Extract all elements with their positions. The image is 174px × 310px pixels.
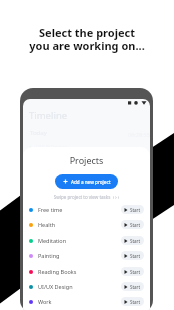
- staticText: UI/UX Design: [38, 283, 73, 290]
- button[interactable]: Work: [23, 294, 150, 309]
- staticText: Health: [38, 221, 56, 228]
- staticText: Painting: [38, 252, 60, 259]
- staticText: Reading Books: [38, 268, 77, 275]
- staticText: Free time: [38, 206, 63, 213]
- button[interactable]: Start: [121, 236, 144, 245]
- button[interactable]: Free time: [23, 202, 150, 217]
- staticText: Start: [130, 207, 141, 213]
- staticText: Start: [130, 238, 141, 244]
- staticText: Start: [130, 269, 141, 275]
- staticText: Timeline: [29, 109, 68, 122]
- button[interactable]: Painting: [23, 248, 150, 263]
- staticText: Meditation: [38, 237, 67, 244]
- button[interactable]: Start: [121, 205, 144, 214]
- staticText: Start: [130, 222, 141, 228]
- button[interactable]: Health: [23, 217, 150, 232]
- staticText: Select the project you are working on...: [29, 25, 145, 53]
- button[interactable]: Start: [121, 267, 144, 276]
- staticText: Start: [130, 284, 141, 290]
- button[interactable]: Start: [121, 251, 144, 260]
- staticText: Swipe project to view tasks › › ›: [23, 194, 150, 200]
- staticText: Today: [30, 129, 47, 137]
- button[interactable]: Add a new project: [55, 174, 118, 189]
- button[interactable]: Start: [121, 297, 144, 306]
- button[interactable]: Start: [121, 220, 144, 229]
- button[interactable]: Meditation: [23, 233, 150, 248]
- button[interactable]: Reading Books: [23, 264, 150, 279]
- staticText: Start: [130, 299, 141, 305]
- staticText: Work: [38, 298, 52, 305]
- button[interactable]: Start: [121, 282, 144, 291]
- staticText: Start: [130, 253, 141, 259]
- staticText: UI/UX Design: [36, 144, 68, 151]
- button[interactable]: UI/UX Design: [23, 279, 150, 294]
- staticText: Add a new project: [71, 179, 111, 185]
- staticText: Projects: [23, 154, 150, 166]
